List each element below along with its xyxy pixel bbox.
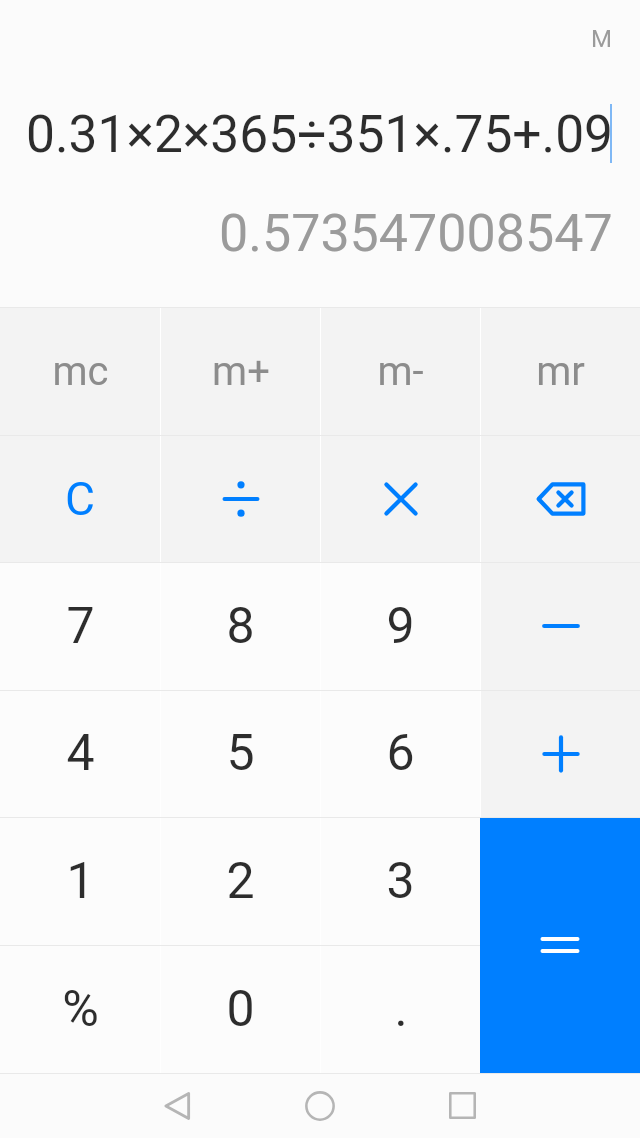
button[interactable]: 0: [161, 945, 320, 1073]
button[interactable]: 4: [0, 690, 160, 817]
button[interactable]: m+: [161, 307, 320, 435]
button[interactable]: Backspace: [481, 435, 640, 562]
button[interactable]: Plus: [481, 690, 640, 817]
button[interactable]: C: [0, 435, 160, 562]
button[interactable]: 8: [161, 562, 320, 690]
button[interactable]: Divide: [161, 435, 320, 562]
staticText: 5: [226, 724, 255, 783]
button[interactable]: Minus: [481, 562, 640, 690]
staticText: .: [394, 980, 408, 1039]
staticText: 0.31×2×365÷351×.75+.09: [26, 104, 614, 164]
staticText: 4: [66, 724, 95, 783]
button[interactable]: Multiply: [321, 435, 480, 562]
staticText: 3: [386, 852, 415, 911]
button[interactable]: 5: [161, 690, 320, 817]
button[interactable]: 1: [0, 817, 160, 945]
button[interactable]: .: [321, 945, 480, 1073]
button[interactable]: 3: [321, 817, 480, 945]
staticText: mc: [52, 348, 109, 395]
button[interactable]: m-: [321, 307, 480, 435]
button[interactable]: 9: [321, 562, 480, 690]
button[interactable]: Recents: [427, 1073, 497, 1138]
staticText: 1: [66, 852, 95, 911]
button[interactable]: mr: [481, 307, 640, 435]
button[interactable]: Home: [285, 1073, 355, 1138]
staticText: 0.573547008547: [219, 203, 613, 264]
staticText: M: [591, 25, 612, 53]
staticText: 6: [386, 724, 415, 783]
staticText: m+: [212, 348, 270, 395]
staticText: 7: [66, 597, 95, 656]
button[interactable]: Equals: [480, 817, 640, 1073]
staticText: %: [62, 980, 99, 1039]
button[interactable]: Back: [143, 1073, 213, 1138]
button[interactable]: 2: [161, 817, 320, 945]
staticText: 8: [226, 597, 255, 656]
button[interactable]: 6: [321, 690, 480, 817]
staticText: 2: [226, 852, 255, 911]
staticText: C: [65, 472, 95, 526]
staticText: 9: [386, 597, 415, 656]
staticText: mr: [536, 348, 585, 395]
staticText: 0: [226, 980, 255, 1039]
staticText: m-: [377, 348, 424, 395]
button[interactable]: mc: [0, 307, 160, 435]
button[interactable]: %: [0, 945, 160, 1073]
button[interactable]: 7: [0, 562, 160, 690]
